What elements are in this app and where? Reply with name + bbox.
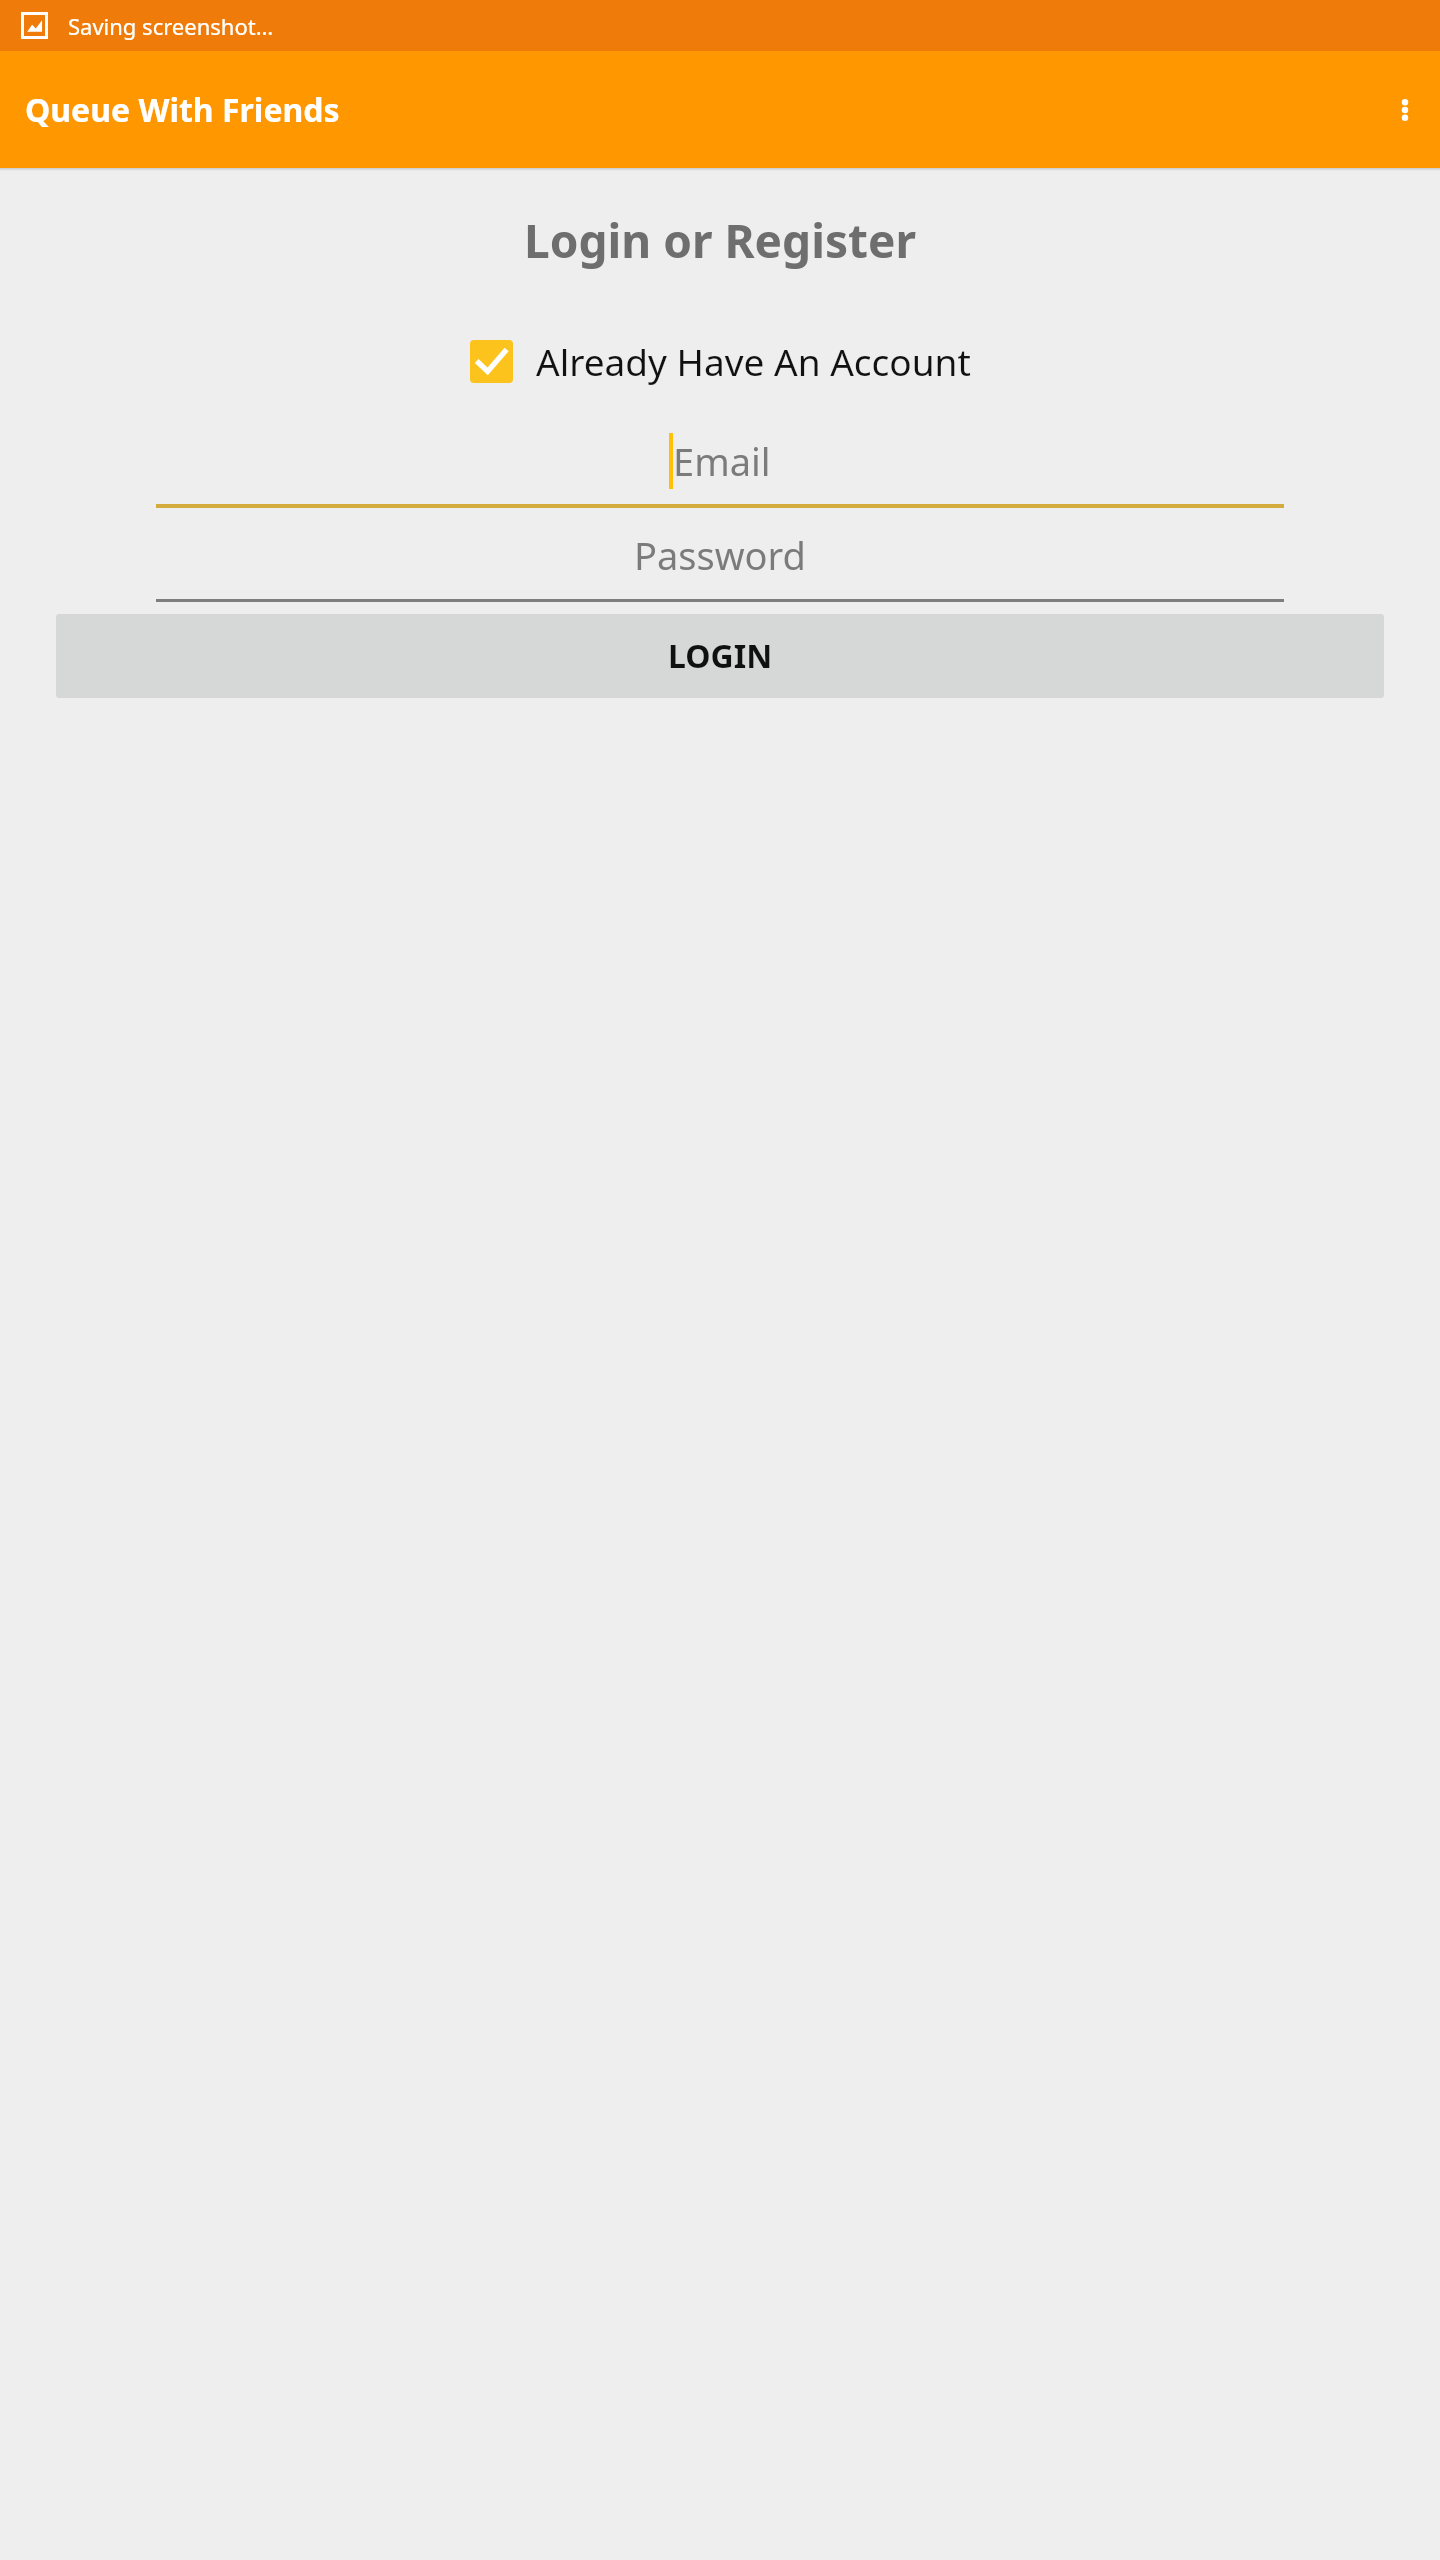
button[interactable]: Email (156, 414, 1284, 508)
staticText: Login or Register (0, 209, 1440, 272)
other: Screenshot saved (21, 12, 48, 39)
staticText: LOGIN (668, 634, 773, 678)
button[interactable]: Already Have An Account (470, 336, 971, 386)
button[interactable]: More options (1380, 85, 1430, 135)
button[interactable]: Password (156, 508, 1284, 602)
staticText: Queue With Friends (25, 88, 340, 132)
button[interactable]: LOGIN (56, 614, 1384, 698)
staticText: Password (634, 529, 806, 581)
staticText: Saving screenshot… (68, 11, 274, 41)
staticText: Email (673, 435, 771, 487)
staticText: Already Have An Account (536, 336, 971, 386)
